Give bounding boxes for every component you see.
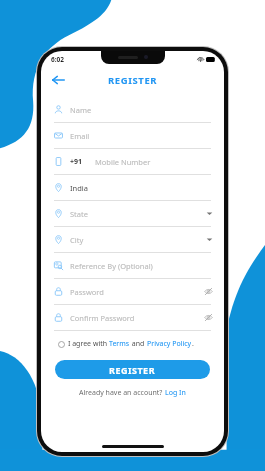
staticText: Already have an account? — [79, 388, 165, 398]
staticText: +91 — [70, 157, 83, 167]
button[interactable]: REGISTER — [55, 360, 210, 379]
staticText: REGISTER — [108, 74, 158, 87]
staticText: Reference By (Optional) — [70, 261, 213, 271]
button[interactable]: I agree with — [58, 336, 224, 352]
staticText: Mobile Number — [95, 157, 213, 167]
button[interactable]: City — [41, 227, 224, 253]
staticText: I agree with — [68, 339, 109, 349]
button[interactable]: Reference By (Optional) — [41, 253, 224, 279]
button[interactable]: Email — [41, 123, 224, 149]
staticText: Log In — [165, 388, 186, 398]
staticText: State — [70, 209, 206, 219]
staticText: Email — [70, 131, 213, 141]
button[interactable]: Password — [41, 279, 224, 305]
button[interactable]: State — [41, 201, 224, 227]
staticText: Privacy Policy — [147, 339, 192, 349]
button[interactable]: +91 — [41, 149, 224, 175]
button[interactable]: India — [41, 175, 224, 201]
button[interactable]: Name — [41, 97, 224, 123]
staticText: 6:02 — [51, 55, 64, 64]
staticText: Terms — [109, 339, 130, 349]
staticText: . — [192, 339, 194, 349]
button[interactable]: Confirm Password — [41, 305, 224, 331]
staticText: Password — [70, 287, 204, 297]
staticText: Name — [70, 105, 213, 115]
staticText: City — [70, 235, 206, 245]
staticText: and — [130, 339, 147, 349]
button[interactable]: Back — [48, 70, 68, 90]
staticText: Confirm Password — [70, 313, 204, 323]
staticText: India — [70, 183, 213, 193]
staticText: REGISTER — [109, 364, 156, 376]
button[interactable]: Already have an account? — [41, 388, 224, 398]
